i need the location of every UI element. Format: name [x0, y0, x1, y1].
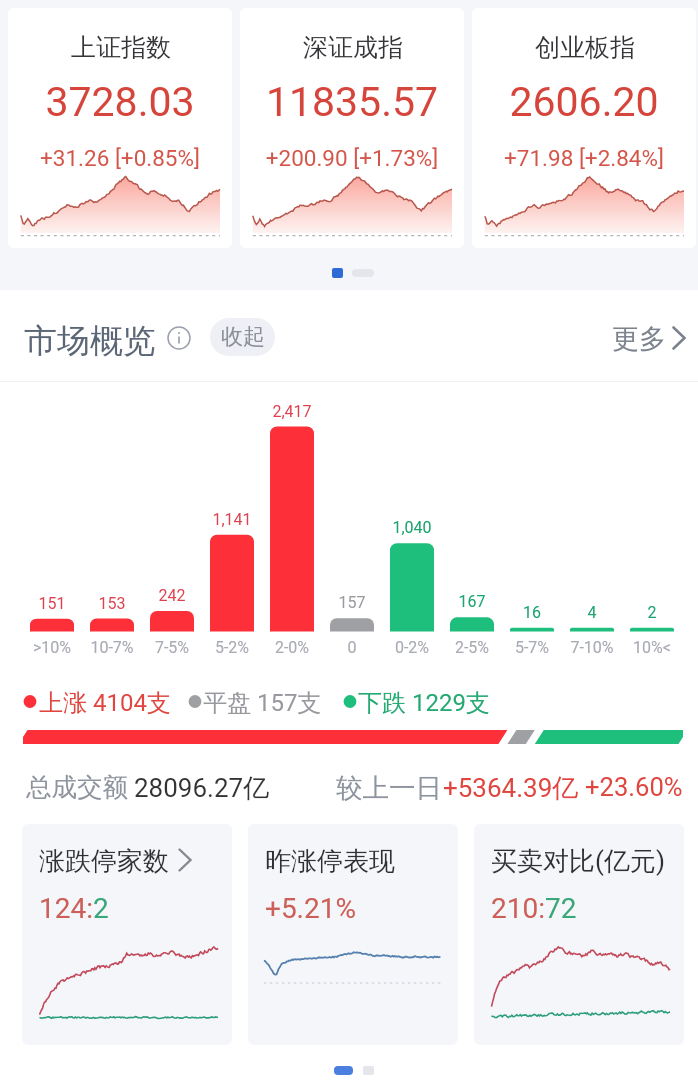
staticText: 更多 — [612, 322, 666, 356]
staticText: 210:72 — [491, 892, 577, 925]
staticText: 市场概览 — [24, 320, 156, 362]
button[interactable]: 昨涨停表现 — [248, 824, 458, 1045]
button[interactable]: 创业板指 — [472, 8, 696, 248]
staticText: 28096.27亿 — [134, 772, 270, 805]
staticText: 3728.03 — [8, 78, 232, 126]
button[interactable]: 深证成指 — [240, 8, 464, 248]
staticText: 总成交额 — [26, 771, 128, 803]
staticText: 151 — [22, 594, 82, 613]
staticText: +71.98 [+2.84%] — [472, 145, 696, 171]
staticText: 7-10% — [562, 638, 622, 657]
staticText: 收起 — [221, 323, 265, 351]
staticText: 7-5% — [142, 638, 202, 657]
staticText: 1,040 — [382, 518, 442, 537]
staticText: 上证指数 — [9, 32, 232, 63]
staticText: 5-2% — [202, 638, 262, 657]
button[interactable]: 更多 — [600, 316, 690, 358]
staticText: 2-5% — [442, 638, 502, 657]
button[interactable]: 上证指数 — [8, 8, 232, 248]
button[interactable] — [0, 302, 160, 370]
staticText: 深证成指 — [241, 32, 464, 63]
staticText: 242 — [142, 586, 202, 605]
staticText: 较上一日 — [336, 771, 442, 804]
staticText: >10% — [22, 638, 82, 657]
staticText: 平盘 157支 — [203, 688, 322, 718]
staticText: 0-2% — [382, 638, 442, 657]
staticText: 124:2 — [39, 892, 109, 925]
staticText: 2 — [622, 603, 682, 622]
staticText: 2,417 — [262, 402, 322, 421]
staticText: 167 — [442, 592, 502, 611]
staticText: 2-0% — [262, 638, 322, 657]
staticText: 4 — [562, 603, 622, 622]
staticText: +23.60% — [585, 772, 683, 802]
staticText: 上涨 4104支 — [39, 688, 171, 718]
staticText: 创业板指 — [473, 32, 696, 63]
button[interactable]: 买卖对比(亿元) — [474, 824, 684, 1045]
staticText: 10-7% — [82, 638, 142, 657]
staticText: 涨跌停家数 — [39, 845, 169, 878]
staticText: 下跌 1229支 — [358, 688, 490, 718]
staticText: 16 — [502, 603, 562, 622]
staticText: 买卖对比(亿元) — [491, 845, 665, 878]
other: 查看详情 — [178, 848, 196, 874]
staticText: +200.90 [+1.73%] — [240, 145, 464, 171]
staticText: 1,141 — [202, 510, 262, 529]
staticText: 0 — [322, 638, 382, 657]
staticText: 2606.20 — [472, 78, 696, 126]
staticText: +5.21% — [265, 892, 356, 925]
staticText: 157 — [322, 593, 382, 612]
button[interactable]: 收起 — [210, 318, 275, 356]
staticText: +5364.39亿 — [443, 772, 579, 805]
button[interactable]: 涨跌停家数 — [22, 824, 232, 1045]
button[interactable]: 指标说明 — [161, 320, 197, 356]
staticText: 153 — [82, 594, 142, 613]
staticText: 5-7% — [502, 638, 562, 657]
staticText: 昨涨停表现 — [265, 845, 395, 878]
staticText: 11835.57 — [240, 78, 464, 126]
staticText: +31.26 [+0.85%] — [8, 145, 232, 171]
staticText: 10%< — [622, 638, 682, 657]
